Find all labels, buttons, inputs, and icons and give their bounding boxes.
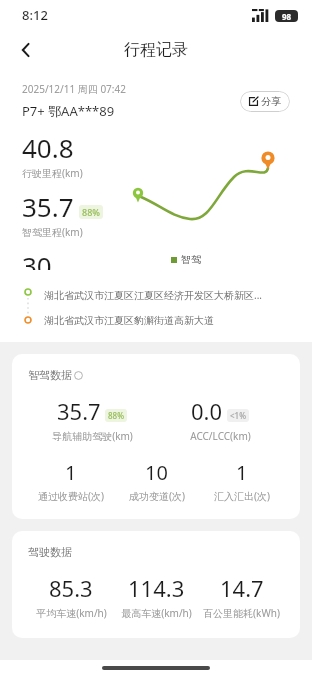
staticText: 1 <box>65 459 77 486</box>
staticText: 88% <box>82 206 100 218</box>
staticText: 30 <box>22 248 52 270</box>
staticText: 98 <box>282 11 292 22</box>
staticText: <1% <box>230 410 246 421</box>
staticText: 14.7 <box>220 573 264 603</box>
staticText: 1 <box>236 459 248 486</box>
staticText: 智驾里程(km) <box>22 225 83 239</box>
staticText: 成功变道(次) <box>129 489 185 503</box>
staticText: 通过收费站(次) <box>38 489 104 503</box>
staticText: 湖北省武汉市江夏区豹澥街道高新大道 <box>44 314 214 327</box>
staticText: 汇入汇出(次) <box>214 489 270 503</box>
staticText: 40.8 <box>22 130 74 165</box>
staticText: 百公里能耗(kWh) <box>203 606 280 620</box>
staticText: 智驾数据 <box>28 368 72 382</box>
staticText: 0.0 <box>191 396 223 426</box>
staticText: 行驶里程(km) <box>22 166 83 180</box>
staticText: 10 <box>145 459 168 486</box>
staticText: 8:12 <box>22 6 48 24</box>
staticText: 35.7 <box>22 189 74 224</box>
staticText: 平均车速(km/h) <box>36 606 107 620</box>
staticText: 湖北省武汉市江夏区江夏区经济开发区大桥新区... <box>44 288 263 302</box>
staticText: P7+ 鄂AA***89 <box>22 102 115 120</box>
staticText: 2025/12/11 周四 07:42 <box>22 82 126 96</box>
staticText: 智驾 <box>181 253 201 266</box>
staticText: 导航辅助驾驶(km) <box>52 429 133 443</box>
staticText: 88% <box>108 410 124 421</box>
staticText: 分享 <box>261 95 281 108</box>
staticText: 驾驶数据 <box>28 545 72 559</box>
staticText: 85.3 <box>49 573 93 603</box>
button[interactable]: 分享 <box>240 91 290 112</box>
staticText: ACC/LCC(km) <box>190 429 251 443</box>
staticText: 最高车速(km/h) <box>121 606 192 620</box>
staticText: 35.7 <box>57 396 101 426</box>
staticText: 行程记录 <box>124 40 188 60</box>
button[interactable]: Back <box>8 32 44 68</box>
staticText: 114.3 <box>128 573 185 603</box>
